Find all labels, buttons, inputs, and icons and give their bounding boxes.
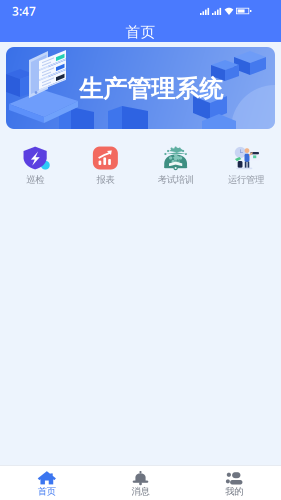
staticText: 首页 — [38, 486, 56, 497]
staticText: 考试培训 — [158, 174, 194, 185]
button[interactable]: 运行管理 — [211, 146, 281, 185]
staticText: 首页 — [125, 23, 155, 41]
staticText: 生产管理系统 — [79, 74, 223, 104]
staticText: 我的 — [225, 486, 243, 497]
staticText: 3:47 — [12, 3, 36, 19]
button[interactable]: 首页 — [0, 464, 94, 500]
button[interactable]: 消息 — [94, 464, 187, 500]
button[interactable]: 考试培训 — [140, 146, 211, 185]
button[interactable]: 我的 — [187, 464, 281, 500]
staticText: 报表 — [96, 174, 114, 185]
button[interactable]: 巡检 — [0, 146, 70, 185]
button[interactable]: 报表 — [70, 146, 140, 185]
staticText: 运行管理 — [228, 174, 264, 185]
staticText: 巡检 — [26, 174, 44, 185]
staticText: 消息 — [131, 486, 149, 497]
